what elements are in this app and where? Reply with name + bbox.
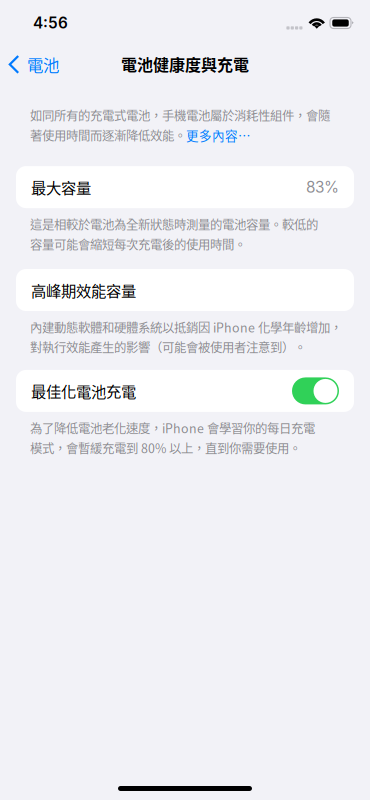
button[interactable]: 更多內容… (186, 126, 251, 144)
button[interactable]: 高峰期效能容量 (0, 269, 370, 311)
staticText: 4:56 (33, 14, 68, 32)
staticText: 最佳化電池充電 (31, 380, 136, 402)
staticText: 為了降低電池老化速度，iPhone 會學習你的每日充電 (30, 419, 315, 437)
staticText: 著使用時間而逐漸降低效能。 (30, 126, 186, 144)
staticText: 內建動態軟體和硬體系統以抵銷因 iPhone 化學年齡增加， (30, 318, 342, 336)
staticText: 模式，會暫緩充電到 80% 以上，直到你需要使用。 (30, 439, 301, 457)
button[interactable]: 電池 (0, 47, 65, 81)
staticText: 高峰期效能容量 (31, 279, 136, 301)
staticText: 如同所有的充電式電池，手機電池屬於消耗性組件，會隨 (30, 106, 330, 124)
staticText: 最大容量 (31, 176, 91, 198)
staticText: 容量可能會縮短每次充電後的使用時間。 (30, 235, 246, 253)
staticText: 這是相較於電池為全新狀態時測量的電池容量。較低的 (30, 215, 318, 233)
staticText: 83% (306, 178, 339, 196)
button[interactable]: 最佳化電池充電 (292, 377, 339, 404)
staticText: 更多內容… (186, 126, 251, 144)
staticText: 電池 (27, 52, 59, 76)
staticText: 電池健康度與充電 (121, 52, 249, 76)
staticText: 對執行效能產生的影響（可能會被使用者注意到）。 (30, 338, 306, 356)
